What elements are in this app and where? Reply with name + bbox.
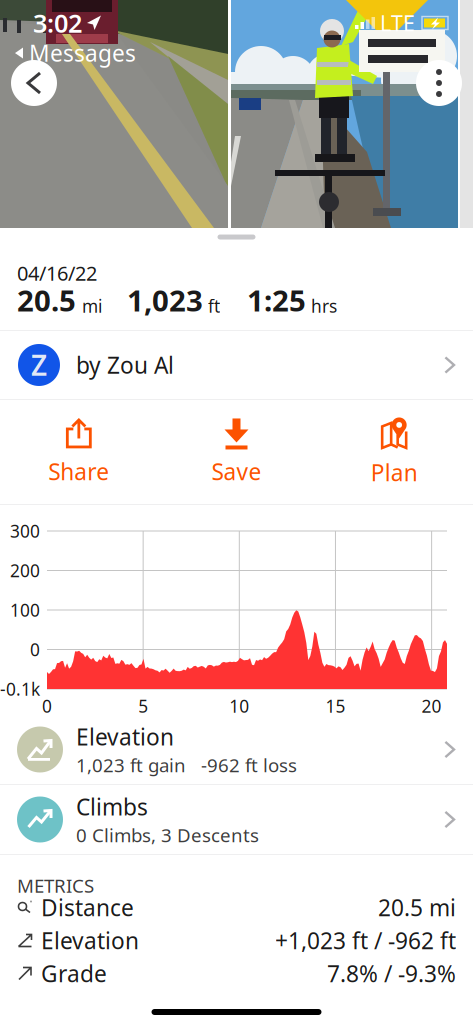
staticText: 1,023 xyxy=(127,280,203,319)
staticText: Distance xyxy=(41,892,134,922)
staticText: 20 xyxy=(422,694,442,717)
staticText: -0.1k xyxy=(0,677,40,700)
staticText: 20.5 xyxy=(17,280,76,319)
staticText: LTE xyxy=(380,9,415,37)
button[interactable]: Back xyxy=(11,60,57,106)
staticText: by Zou Al xyxy=(76,350,174,380)
staticText: Messages xyxy=(29,38,136,68)
staticText: 200 xyxy=(10,559,40,582)
staticText: Grade xyxy=(41,958,107,988)
button[interactable]: More options xyxy=(416,60,462,106)
staticText: 0 Climbs, 3 Descents xyxy=(76,823,259,847)
button[interactable]: Save xyxy=(158,415,315,489)
staticText: Elevation xyxy=(41,925,139,955)
staticText: Elevation xyxy=(76,722,174,752)
staticText: hrs xyxy=(311,294,337,317)
staticText: 0 xyxy=(30,638,40,661)
button[interactable]: Share xyxy=(0,415,158,489)
staticText: +1,023 ft / -962 ft xyxy=(275,925,456,955)
staticText: 5 xyxy=(138,694,148,717)
button[interactable]: Z xyxy=(0,331,473,399)
staticText: 7.8% / -9.3% xyxy=(327,958,456,988)
button[interactable]: Plan xyxy=(315,415,473,489)
staticText: Share xyxy=(48,456,109,486)
staticText: ft xyxy=(208,294,220,317)
staticText: METRICS xyxy=(17,873,94,898)
button[interactable]: Climbs xyxy=(0,785,473,854)
staticText: 10 xyxy=(229,694,249,717)
staticText: mi xyxy=(82,294,102,317)
staticText: 1,023 ft gain -962 ft loss xyxy=(76,753,297,777)
staticText: 0 xyxy=(42,694,52,717)
staticText: 15 xyxy=(325,694,345,717)
staticText: 20.5 mi xyxy=(378,892,456,922)
staticText: Save xyxy=(211,456,261,486)
staticText: 04/16/22 xyxy=(17,260,97,286)
staticText: Z xyxy=(31,346,47,384)
staticText: Plan xyxy=(371,457,418,487)
staticText: Climbs xyxy=(76,792,148,822)
staticText: 100 xyxy=(10,598,40,621)
staticText: 3:02 xyxy=(33,6,82,40)
staticText: 300 xyxy=(10,519,40,542)
button[interactable]: Elevation xyxy=(0,715,473,784)
staticText: 1:25 xyxy=(247,280,306,319)
